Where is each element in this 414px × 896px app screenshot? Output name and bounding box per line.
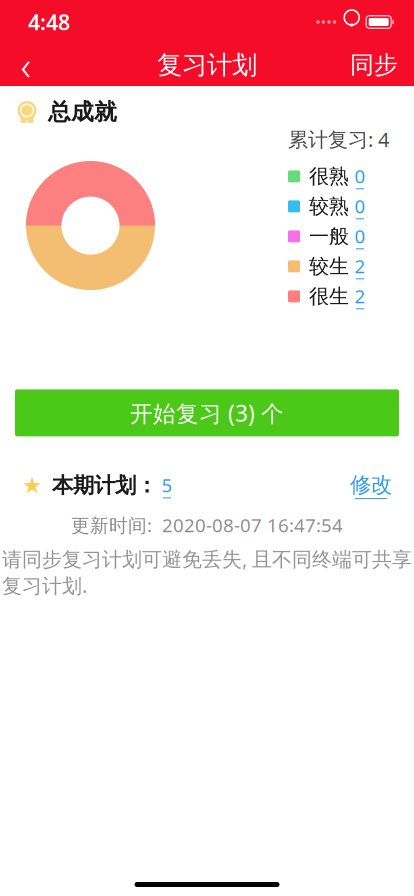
staticText: 总成就: [48, 98, 117, 126]
button[interactable]: 同步: [334, 44, 414, 86]
button[interactable]: 2: [349, 286, 371, 306]
staticText: 开始复习 (3) 个: [130, 398, 284, 428]
staticText: 5: [161, 473, 172, 497]
staticText: 复习计划: [157, 49, 257, 80]
staticText: 2: [354, 283, 365, 308]
button[interactable]: 2: [349, 256, 371, 276]
staticText: 2: [354, 253, 365, 278]
button[interactable]: 0: [349, 196, 371, 216]
button[interactable]: 修改: [346, 472, 396, 498]
button[interactable]: 0: [349, 226, 371, 246]
staticText: 本期计划：: [52, 472, 157, 499]
staticText: 较生: [309, 254, 349, 279]
staticText: 4:48: [28, 8, 70, 36]
staticText: ‹: [20, 38, 31, 91]
button[interactable]: Back: [0, 44, 52, 86]
staticText: 累计复习: 4: [288, 126, 389, 152]
staticText: 0: [354, 163, 365, 188]
staticText: 请同步复习计划可避免丢失, 且不同终端可共享复习计划.: [2, 545, 412, 598]
staticText: 更新时间: 2020-08-07 16:47:54: [71, 513, 343, 537]
staticText: 修改: [350, 472, 392, 498]
staticText: 很熟: [309, 164, 349, 189]
staticText: ★: [22, 473, 42, 498]
staticText: 0: [354, 223, 365, 248]
staticText: 0: [354, 193, 365, 218]
button[interactable]: 5: [157, 474, 177, 496]
staticText: 较熟: [309, 194, 349, 219]
staticText: 很生: [309, 284, 349, 309]
button[interactable]: 开始复习 (3) 个: [15, 389, 399, 436]
staticText: 同步: [350, 50, 398, 80]
button[interactable]: 0: [349, 166, 371, 186]
staticText: 一般: [309, 224, 349, 249]
